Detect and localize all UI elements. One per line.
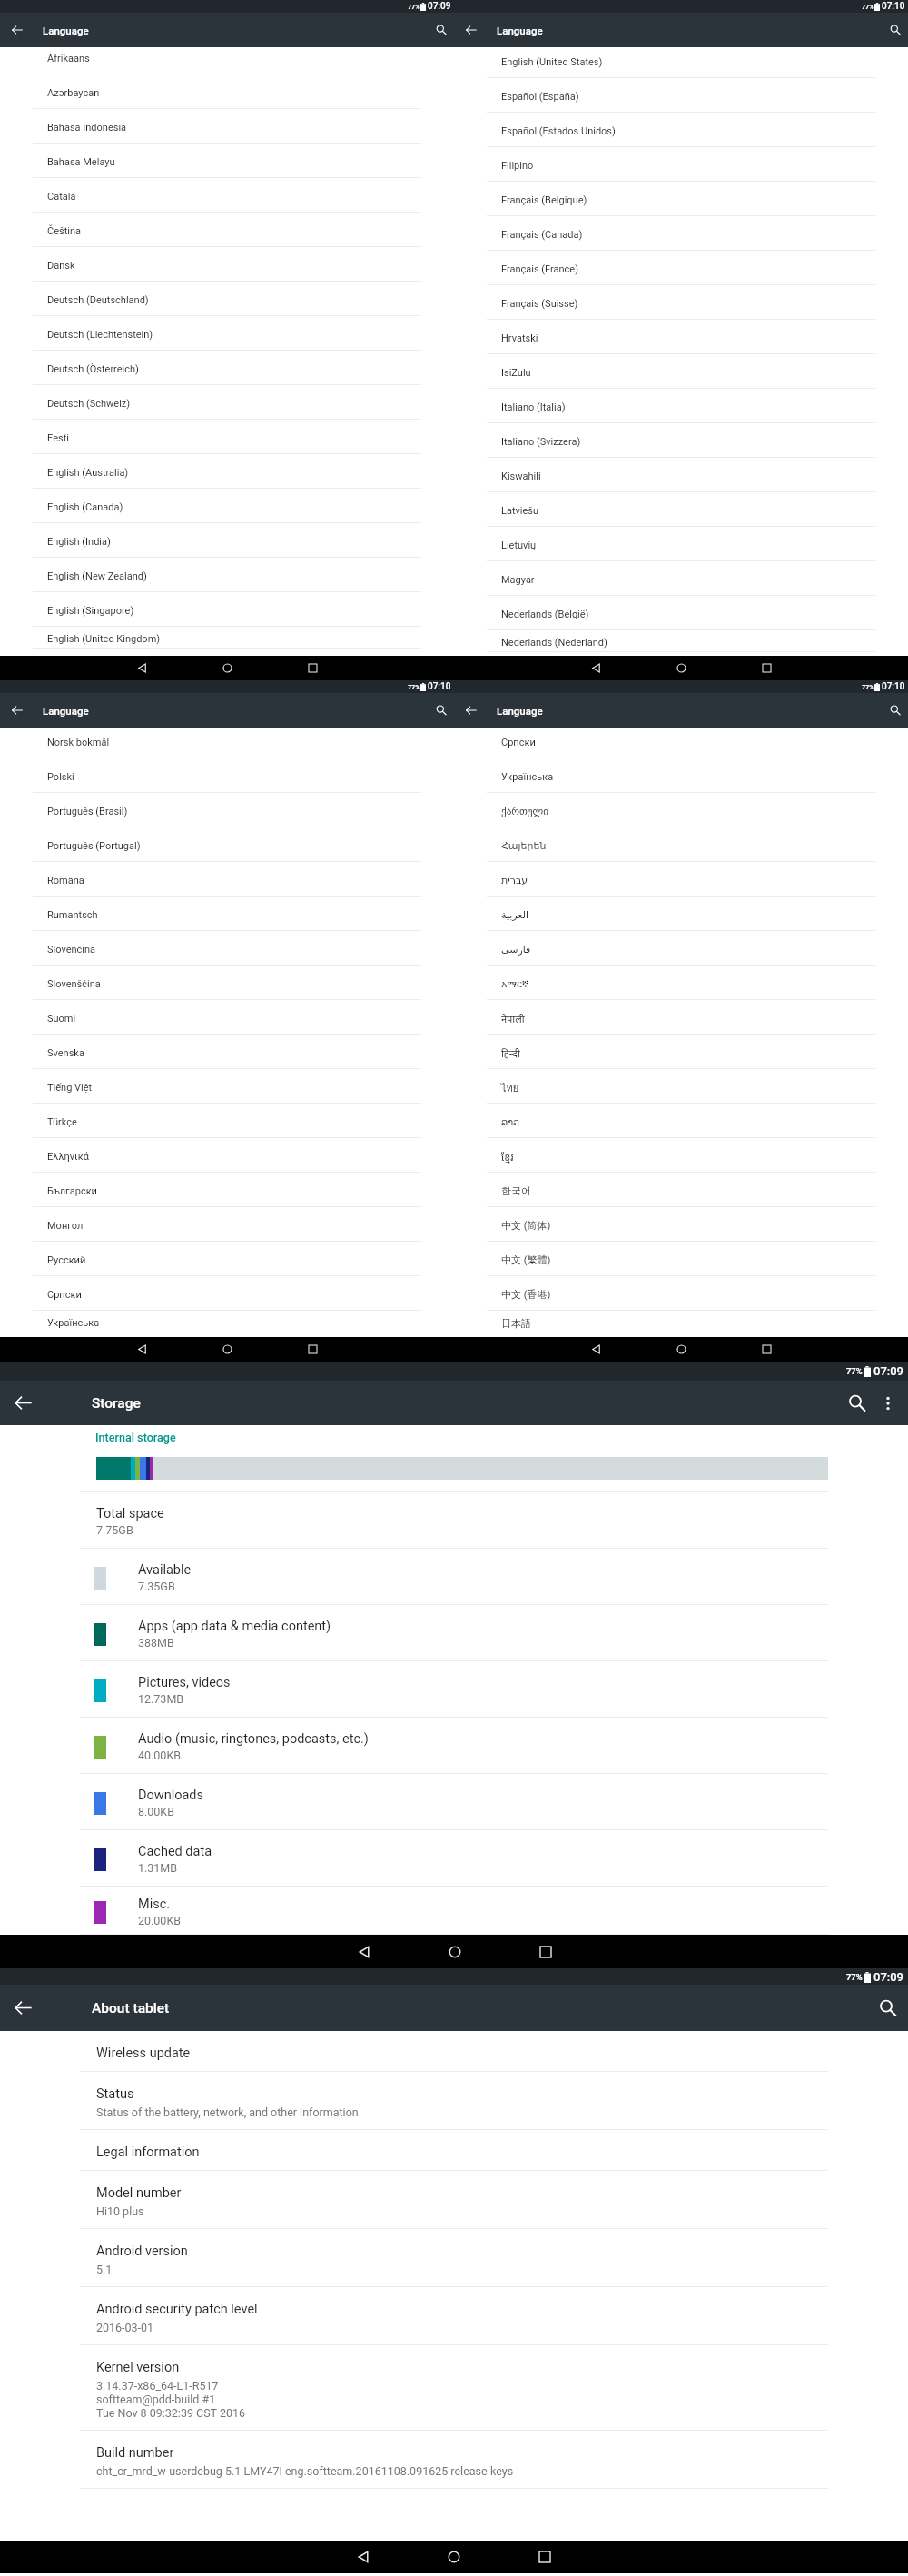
button[interactable]: Home <box>669 1337 694 1362</box>
button[interactable]: Downloads <box>0 1774 908 1830</box>
button[interactable]: Apps (app data & media content) <box>0 1605 908 1661</box>
button[interactable]: English (United States) <box>454 47 908 78</box>
button[interactable]: Türkçe <box>0 1104 454 1138</box>
button[interactable]: Bahasa Indonesia <box>0 109 454 144</box>
button[interactable]: Navigate up <box>454 13 489 47</box>
button[interactable]: Italiano (Svizzera) <box>454 423 908 458</box>
button[interactable]: Español (España) <box>454 78 908 113</box>
button[interactable]: 日本語 <box>454 1311 908 1333</box>
button[interactable]: Nederlands (Nederland) <box>454 630 908 652</box>
button[interactable]: Audio (music, ringtones, podcasts, etc.) <box>0 1718 908 1774</box>
button[interactable]: Ελληνικά <box>0 1138 454 1173</box>
button[interactable]: Pictures, videos <box>0 1661 908 1718</box>
button[interactable]: ລາວ <box>454 1104 908 1138</box>
button[interactable]: Português (Brasil) <box>0 793 454 827</box>
button[interactable]: አማርኛ <box>454 966 908 1000</box>
button[interactable]: Magyar <box>454 561 908 596</box>
button[interactable]: Search <box>878 13 908 47</box>
button[interactable]: More options <box>865 1381 908 1425</box>
button[interactable]: Azərbaycan <box>0 74 454 109</box>
button[interactable]: עברית <box>454 862 908 897</box>
button[interactable]: Français (Belgique) <box>454 182 908 216</box>
button[interactable]: فارسی <box>454 931 908 966</box>
button[interactable]: Home <box>438 1935 471 1968</box>
button[interactable]: Navigate up <box>454 693 489 728</box>
button[interactable]: 中文 (繁體) <box>454 1242 908 1276</box>
button[interactable]: Slovenščina <box>0 966 454 1000</box>
button[interactable]: English (Canada) <box>0 489 454 523</box>
button[interactable]: Recent apps <box>755 656 779 680</box>
button[interactable]: Status <box>0 2072 908 2130</box>
button[interactable]: Android version <box>0 2229 908 2287</box>
button[interactable]: Català <box>0 178 454 213</box>
button[interactable]: IsiZulu <box>454 354 908 389</box>
button[interactable]: Legal information <box>0 2130 908 2171</box>
button[interactable]: Home <box>669 656 694 680</box>
button[interactable]: English (India) <box>0 523 454 558</box>
button[interactable]: Back <box>347 1935 380 1968</box>
button[interactable]: Back <box>584 656 608 680</box>
button[interactable]: Tiếng Việt <box>0 1069 454 1104</box>
button[interactable]: Polski <box>0 758 454 793</box>
button[interactable]: Recent apps <box>528 2541 561 2573</box>
button[interactable]: Español (Estados Unidos) <box>454 113 908 147</box>
button[interactable]: العربية <box>454 897 908 931</box>
button[interactable]: Back <box>347 2541 380 2573</box>
button[interactable]: ខ្មែរ <box>454 1138 908 1173</box>
button[interactable]: Українська <box>454 758 908 793</box>
button[interactable]: Hrvatski <box>454 320 908 354</box>
button[interactable]: Svenska <box>0 1035 454 1069</box>
button[interactable]: ქართული <box>454 793 908 827</box>
button[interactable]: Deutsch (Liechtenstein) <box>0 316 454 351</box>
button[interactable]: Afrikaans <box>0 47 454 74</box>
button[interactable]: Home <box>215 1337 240 1362</box>
button[interactable]: Rumantsch <box>0 897 454 931</box>
button[interactable]: Back <box>130 1337 154 1362</box>
button[interactable]: Filipino <box>454 147 908 182</box>
button[interactable]: English (Australia) <box>0 454 454 489</box>
button[interactable]: Français (Suisse) <box>454 285 908 320</box>
button[interactable]: Latviešu <box>454 492 908 527</box>
button[interactable]: Български <box>0 1173 454 1207</box>
button[interactable]: Bahasa Melayu <box>0 144 454 178</box>
button[interactable]: Cached data <box>0 1830 908 1887</box>
button[interactable]: Italiano (Italia) <box>454 389 908 423</box>
button[interactable]: Search <box>834 1381 879 1425</box>
button[interactable]: Navigate up <box>0 693 35 728</box>
button[interactable]: Home <box>438 2541 470 2573</box>
button[interactable]: Português (Portugal) <box>0 827 454 862</box>
button[interactable]: Српски <box>0 1276 454 1311</box>
button[interactable]: Search <box>424 693 459 728</box>
button[interactable]: Misc. <box>0 1887 908 1935</box>
button[interactable]: ไทย <box>454 1069 908 1104</box>
button[interactable]: 中文 (香港) <box>454 1276 908 1311</box>
button[interactable]: English (United Kingdom) <box>0 627 454 649</box>
button[interactable]: Deutsch (Schweiz) <box>0 385 454 420</box>
button[interactable]: 한국어 <box>454 1173 908 1207</box>
button[interactable]: Wireless update <box>0 2031 908 2072</box>
button[interactable]: Recent apps <box>301 1337 325 1362</box>
button[interactable]: Lietuvių <box>454 527 908 561</box>
button[interactable]: Back <box>130 656 154 680</box>
button[interactable]: Українська <box>0 1311 454 1333</box>
button[interactable]: English (New Zealand) <box>0 558 454 592</box>
button[interactable]: Српски <box>454 728 908 758</box>
button[interactable]: Suomi <box>0 1000 454 1035</box>
button[interactable]: Back <box>584 1337 608 1362</box>
button[interactable]: 中文 (简体) <box>454 1207 908 1242</box>
button[interactable]: Norsk bokmål <box>0 728 454 758</box>
button[interactable]: Navigate up <box>0 13 35 47</box>
button[interactable]: Slovenčina <box>0 931 454 966</box>
button[interactable]: Search <box>878 693 908 728</box>
button[interactable]: Română <box>0 862 454 897</box>
button[interactable]: Français (Canada) <box>454 216 908 251</box>
button[interactable]: Հայերեն <box>454 827 908 862</box>
button[interactable]: Eesti <box>0 420 454 454</box>
button[interactable]: नेपाली <box>454 1000 908 1035</box>
button[interactable]: हिन्दी <box>454 1035 908 1069</box>
button[interactable]: Home <box>215 656 240 680</box>
button[interactable]: Available <box>0 1549 908 1605</box>
button[interactable]: Français (France) <box>454 251 908 285</box>
button[interactable]: Kernel version <box>0 2345 908 2431</box>
button[interactable]: Navigate up <box>0 1985 46 2031</box>
